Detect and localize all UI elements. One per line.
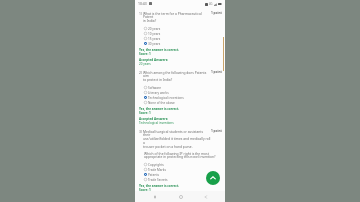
button[interactable]: Trade Marks: [139, 167, 222, 172]
button[interactable]: Patents: [139, 172, 222, 177]
staticText: 3): [139, 129, 142, 133]
staticText: Accepted Answers:: [139, 58, 169, 62]
button[interactable]: Recents: [149, 191, 160, 202]
staticText: Medical/surgical students or assistants …: [143, 129, 211, 149]
staticText: Yes, the answer is correct.: [139, 48, 180, 52]
button[interactable]: None of the above: [139, 100, 222, 105]
button[interactable]: 20 years: [139, 26, 222, 31]
staticText: None of the above: [148, 101, 175, 105]
button[interactable]: Copyrights: [139, 162, 222, 167]
staticText: Which among the following does Patents a…: [143, 70, 211, 82]
button[interactable]: 30 years: [139, 41, 222, 46]
staticText: Copyrights: [148, 163, 164, 167]
button[interactable]: Scroll to top: [206, 171, 220, 185]
staticText: 30 years: [148, 42, 161, 46]
staticText: 1 point: [211, 11, 222, 15]
staticText: Technological inventions: [139, 121, 174, 125]
button[interactable]: Software: [139, 85, 222, 90]
staticText: Literary works: [148, 91, 169, 95]
staticText: Score: 1: [139, 111, 151, 115]
staticText: Trade Secrets: [148, 178, 168, 182]
staticText: 10 years: [148, 32, 161, 36]
staticText: 2): [139, 70, 142, 74]
staticText: Yes, the answer is correct.: [139, 184, 180, 188]
button[interactable]: Technological inventions: [139, 95, 222, 100]
staticText: 1 point: [211, 70, 222, 74]
staticText: Software: [148, 86, 161, 90]
staticText: Accepted Answers:: [139, 117, 169, 121]
button[interactable]: Trade Secrets: [139, 177, 222, 182]
button[interactable]: Literary works: [139, 90, 222, 95]
staticText: 1): [139, 11, 142, 15]
staticText: What is the term for a Pharmaceutical Pa…: [143, 11, 211, 23]
staticText: 20 years: [139, 62, 151, 66]
staticText: 1 point: [211, 129, 222, 133]
staticText: 20 years: [148, 27, 161, 31]
staticText: 15 years: [148, 37, 161, 41]
button[interactable]: Home: [175, 191, 186, 202]
staticText: Which of the following IP right is the m…: [144, 151, 216, 159]
staticText: Technological inventions: [148, 96, 184, 100]
staticText: Yes, the answer is correct.: [139, 107, 180, 111]
staticText: Score: 1: [139, 188, 151, 191]
staticText: Patents: [148, 173, 159, 177]
button[interactable]: 10 years: [139, 31, 222, 36]
button[interactable]: Back: [200, 191, 211, 202]
staticText: Score: 1: [139, 52, 151, 56]
button[interactable]: 15 years: [139, 36, 222, 41]
staticText: Trade Marks: [148, 168, 166, 172]
staticText: 4G: [209, 2, 213, 6]
staticText: 10:43: [138, 1, 147, 6]
